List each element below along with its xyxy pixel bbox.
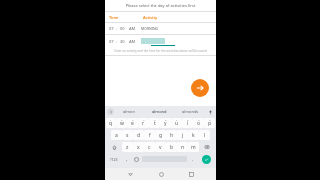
button[interactable]: 4 [138, 118, 149, 128]
button[interactable]: ?123 [106, 154, 122, 164]
staticText: v [159, 144, 162, 151]
button[interactable]: almond [144, 106, 175, 117]
button[interactable]: Emoji [131, 154, 141, 164]
button[interactable]: s [122, 130, 133, 140]
staticText: j [182, 132, 184, 139]
button[interactable]: h [166, 130, 177, 140]
staticText: l [204, 132, 206, 139]
button[interactable]: Next [191, 79, 209, 97]
staticText: y [164, 120, 167, 127]
staticText: Please select the day of activities firs… [105, 3, 216, 8]
staticText: w [120, 120, 124, 127]
staticText: almond [152, 109, 167, 114]
button[interactable]: x [133, 142, 144, 152]
button[interactable]: Back [125, 169, 135, 179]
staticText: c [148, 144, 151, 151]
staticText: : [116, 26, 118, 31]
button[interactable]: 07 [109, 38, 212, 44]
staticText: 9 [198, 118, 200, 121]
staticText: d [137, 132, 141, 139]
staticText: 1 [110, 118, 112, 121]
button[interactable]: 7 [171, 118, 182, 128]
staticText: b [170, 144, 174, 151]
button[interactable]: k [188, 130, 199, 140]
button[interactable]: 3 [127, 118, 138, 128]
staticText: z [126, 144, 129, 151]
button[interactable]: 07 [109, 26, 212, 31]
staticText: Enter an activity and the time for the a… [113, 49, 208, 53]
staticText: 2 [121, 118, 123, 121]
staticText: AM [129, 26, 136, 31]
button[interactable]: 0 [204, 118, 215, 128]
staticText: 07 [109, 39, 114, 44]
staticText: , [126, 156, 128, 162]
button[interactable]: Enter [202, 155, 211, 164]
button[interactable]: , [122, 154, 131, 164]
staticText: o [197, 120, 201, 127]
staticText: ?123 [110, 157, 118, 162]
button[interactable]: Shift [106, 142, 122, 152]
button[interactable]: Home [156, 169, 166, 179]
staticText: e [131, 120, 134, 127]
staticText: 3 [132, 118, 134, 121]
button[interactable]: j [177, 130, 188, 140]
staticText: a [115, 132, 118, 139]
staticText: k [192, 132, 195, 139]
button[interactable]: c [144, 142, 155, 152]
staticText: 8 [187, 118, 189, 121]
button[interactable]: almon [114, 106, 144, 117]
button[interactable]: z [122, 142, 133, 152]
button[interactable]: 2 [116, 118, 127, 128]
staticText: 07 [109, 26, 114, 31]
staticText: h [170, 132, 174, 139]
staticText: Activity [143, 15, 158, 20]
button[interactable]: f [144, 130, 155, 140]
staticText: 30 [120, 39, 125, 44]
staticText: 0 [209, 118, 211, 121]
staticText: : [116, 39, 118, 44]
staticText: t [154, 120, 156, 127]
staticText: almonds [182, 109, 199, 114]
button[interactable]: 8 [182, 118, 193, 128]
button[interactable]: 1 [106, 118, 116, 128]
button[interactable]: 6 [160, 118, 171, 128]
staticText: . [192, 156, 194, 162]
button[interactable]: 9 [193, 118, 204, 128]
button[interactable]: almonds [175, 106, 206, 117]
button[interactable]: n [177, 142, 188, 152]
staticText: i [187, 120, 189, 127]
staticText: m [191, 144, 196, 151]
staticText: MORNING [141, 26, 159, 31]
staticText: Time [109, 15, 143, 20]
button[interactable]: m [188, 142, 199, 152]
staticText: n [181, 144, 185, 151]
staticText: AM [129, 39, 136, 44]
staticText: 5 [154, 118, 156, 121]
staticText: g [159, 132, 163, 139]
staticText: x [137, 144, 140, 151]
button[interactable]: Voice input [206, 108, 214, 116]
button[interactable]: b [166, 142, 177, 152]
button[interactable]: l [199, 130, 210, 140]
staticText: 6 [165, 118, 167, 121]
button[interactable]: g [155, 130, 166, 140]
staticText: r [142, 120, 145, 127]
button[interactable]: Recents [186, 169, 196, 179]
staticText: 7 [176, 118, 178, 121]
button[interactable]: Backspace [199, 142, 215, 152]
button[interactable]: a [111, 130, 122, 140]
staticText: 4 [143, 118, 145, 121]
button[interactable]: More suggestions [107, 108, 114, 115]
button[interactable]: v [155, 142, 166, 152]
staticText: p [208, 120, 212, 127]
staticText: q [109, 120, 113, 127]
button[interactable]: . [188, 154, 197, 164]
button[interactable]: d [133, 130, 144, 140]
staticText: f [149, 132, 151, 139]
staticText: u [175, 120, 179, 127]
staticText: 00 [120, 26, 125, 31]
button[interactable]: 5 [149, 118, 160, 128]
staticText: s [126, 132, 129, 139]
